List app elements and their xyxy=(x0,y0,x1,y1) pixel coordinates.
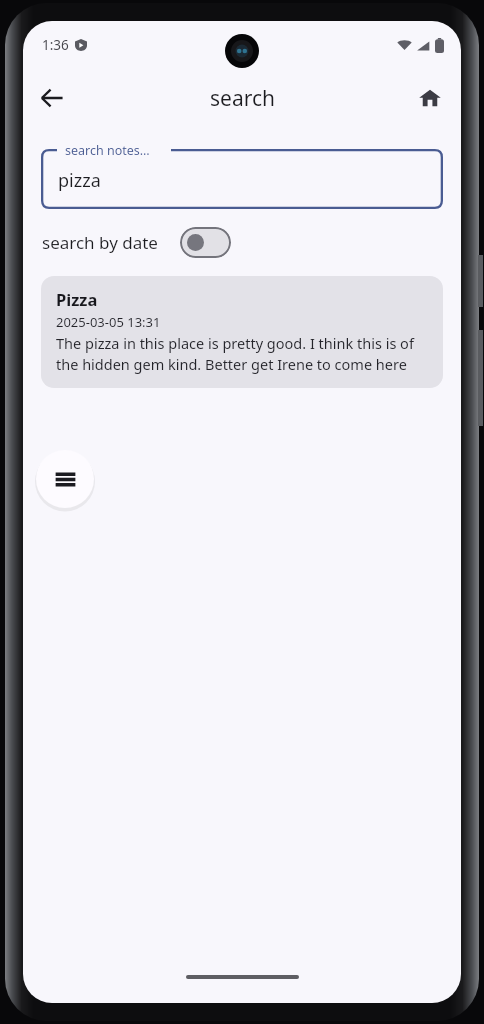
button[interactable]: Home xyxy=(407,75,453,121)
button[interactable]: Pizza xyxy=(41,276,443,388)
staticText: 1:36 xyxy=(42,36,69,54)
button[interactable]: pizza xyxy=(41,149,443,209)
staticText: search by date xyxy=(42,231,158,254)
staticText: pizza xyxy=(58,168,101,193)
staticText: search xyxy=(210,84,275,113)
button[interactable]: Search by date toggle xyxy=(180,227,231,258)
button[interactable]: Menu xyxy=(36,450,94,508)
staticText: The pizza in this place is pretty good. … xyxy=(56,333,429,375)
staticText: search notes… xyxy=(65,142,150,159)
button[interactable]: Back xyxy=(29,75,75,121)
staticText: Pizza xyxy=(56,288,98,310)
staticText: 2025-03-05 13:31 xyxy=(56,313,161,331)
